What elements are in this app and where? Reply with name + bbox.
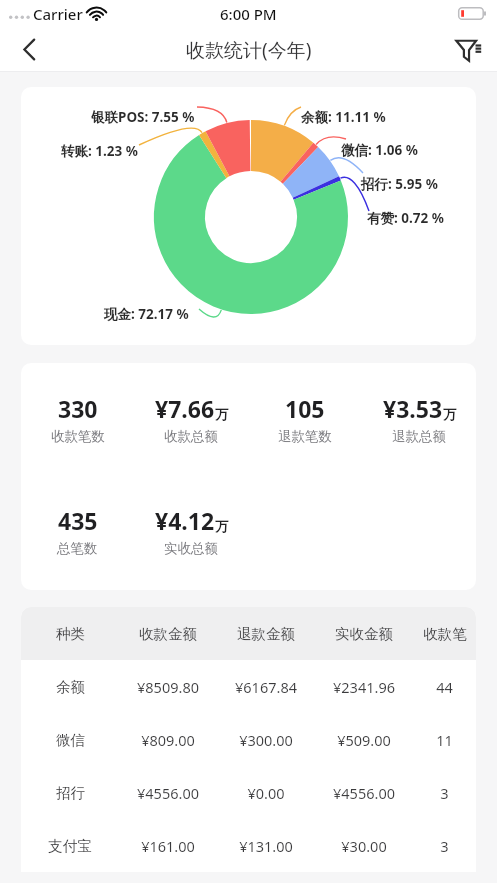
staticText: ¥300.00 [239,730,293,750]
staticText: 退款金额 [237,625,295,643]
staticText: 退款总额 [392,428,446,445]
staticText: 招行 [56,784,85,802]
staticText: ¥3.53 [383,393,443,424]
staticText: 44 [436,677,453,697]
staticText: 微信: 1.06 % [341,141,418,159]
staticText: 3 [440,836,449,856]
staticText: ¥0.00 [247,783,285,803]
staticText: ¥131.00 [239,836,293,856]
button[interactable]: 支付宝 [21,819,476,872]
staticText: ¥4556.00 [137,783,199,803]
staticText: ¥6167.84 [235,677,297,697]
staticText: 收款笔数 [51,428,105,445]
staticText: 330 [58,393,98,424]
staticText: 微信 [56,731,85,749]
staticText: 支付宝 [48,837,92,855]
staticText: 3 [440,783,449,803]
staticText: 余额: 11.11 % [301,108,386,126]
staticText: 收款总额 [164,428,218,445]
staticText: ¥30.00 [341,836,387,856]
staticText: 万 [215,518,228,534]
staticText: 有赞: 0.72 % [367,209,444,227]
staticText: 余额 [56,678,85,696]
staticText: 退款笔数 [278,428,332,445]
staticText: 转账: 1.23 % [61,142,138,160]
staticText: ¥809.00 [141,730,195,750]
staticText: 收款笔 [423,625,467,643]
staticText: Carrier [33,4,83,24]
staticText: 银联POS: 7.55 % [91,108,195,126]
staticText: ¥4556.00 [333,783,395,803]
button[interactable]: 微信 [21,713,476,766]
staticText: 11 [436,730,453,750]
staticText: 105 [285,393,325,424]
staticText: 实收总额 [164,540,218,557]
button[interactable]: 余额 [21,660,476,713]
staticText: 种类 [56,625,85,643]
staticText: ¥2341.96 [333,677,395,697]
staticText: 招行: 5.95 % [361,175,438,193]
staticText: 万 [443,406,456,422]
staticText: 现金: 72.17 % [104,305,189,323]
staticText: ¥8509.80 [137,677,199,697]
staticText: 收款金额 [139,625,197,643]
staticText: ¥7.66 [155,393,215,424]
button[interactable]: 招行 [21,766,476,819]
staticText: ¥161.00 [141,836,195,856]
button[interactable]: Back [0,27,58,72]
staticText: 实收金额 [335,625,393,643]
button[interactable]: Filter [439,27,497,72]
staticText: ¥509.00 [337,730,391,750]
staticText: 6:00 PM [220,4,277,24]
staticText: 435 [58,505,98,536]
staticText: 万 [215,406,228,422]
staticText: ¥4.12 [155,505,215,536]
staticText: 总笔数 [57,540,98,557]
staticText: 收款统计(今年) [186,37,312,63]
